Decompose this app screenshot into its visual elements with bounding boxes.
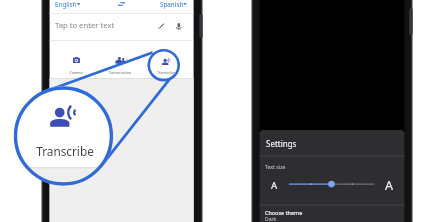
staticText: Transcribe: [106, 70, 226, 75]
staticText: Camera: [16, 70, 136, 75]
staticText: Dark: [265, 216, 277, 222]
button[interactable]: Text size: [260, 156, 404, 204]
button[interactable]: Target language Spanish: [158, 0, 188, 13]
staticText: Tap to enter text: [55, 20, 115, 30]
button[interactable]: Voice input: [173, 20, 185, 33]
button[interactable]: Transcribe: [143, 42, 189, 78]
button[interactable]: Tap to enter text: [50, 14, 155, 40]
button[interactable]: Transcribe: [14, 87, 113, 186]
staticText: Conversation: [60, 70, 180, 75]
button[interactable]: Conversation: [98, 42, 142, 78]
button[interactable]: Choose theme Dark: [260, 205, 404, 222]
staticText: Transcribe: [5, 143, 125, 159]
staticText: A: [329, 177, 448, 194]
staticText: A: [214, 179, 334, 192]
staticText: English: [55, 0, 77, 9]
button[interactable]: Swap languages: [116, 0, 127, 13]
button[interactable]: Camera: [54, 42, 98, 78]
button[interactable]: Handwriting input: [156, 20, 168, 33]
button[interactable]: Source language English: [54, 0, 82, 13]
staticText: Choose theme: [265, 209, 303, 216]
staticText: Text size: [265, 163, 286, 170]
staticText: Spanish: [160, 0, 184, 9]
staticText: Settings: [266, 138, 297, 149]
